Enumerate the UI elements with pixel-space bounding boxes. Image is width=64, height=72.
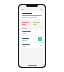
button[interactable]: Card two bbox=[32, 21, 43, 26]
button[interactable] bbox=[21, 43, 43, 48]
button[interactable]: Add bbox=[21, 36, 43, 42]
button[interactable] bbox=[21, 30, 43, 35]
button[interactable] bbox=[21, 12, 43, 19]
button[interactable]: Add bbox=[38, 37, 42, 41]
button[interactable]: Card one bbox=[21, 21, 31, 26]
